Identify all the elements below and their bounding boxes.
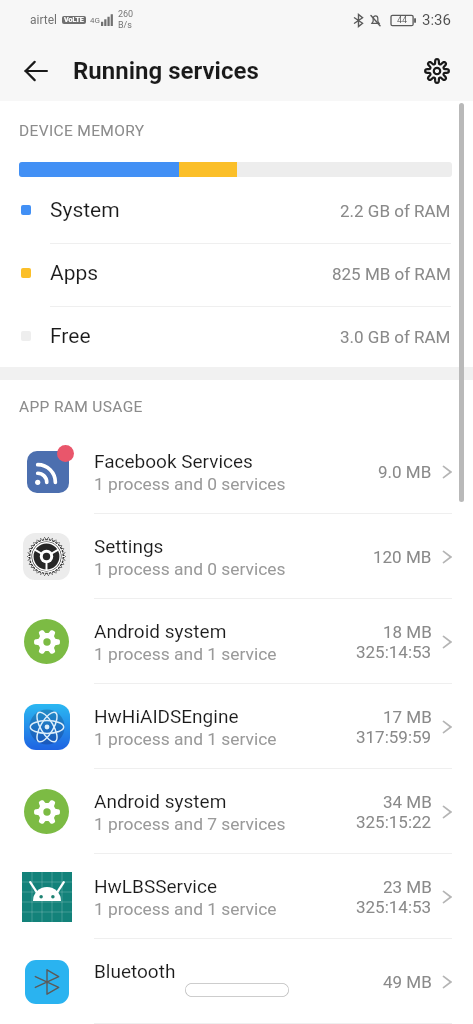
button[interactable]: Android system [0,769,473,854]
button[interactable]: Settings [413,47,461,95]
staticText: 120 MB [373,547,432,567]
staticText: 49 MB [383,972,432,992]
staticText: Facebook Services [94,450,253,472]
staticText: 1 process and 1 service [94,729,277,749]
staticText: 18 MB [383,622,432,642]
staticText: 325:15:22 [356,812,432,832]
staticText: Free [50,324,91,349]
button[interactable]: HwHiAIDSEngine [0,684,473,769]
staticText: 325:14:53 [356,642,432,662]
button[interactable]: Back [12,47,60,95]
button[interactable]: Android system [0,599,473,684]
staticText: 2.2 GB of RAM [340,201,451,221]
staticText: 1 process and 0 services [94,474,286,494]
staticText: B/s [118,20,132,31]
staticText: System [50,198,120,223]
button[interactable]: Bluetooth [0,939,473,1024]
button[interactable]: System [0,181,473,244]
button[interactable]: Facebook Services [0,429,473,514]
staticText: 3:36 [422,11,451,29]
staticText: Bluetooth [94,960,176,982]
staticText: 23 MB [383,877,432,897]
button[interactable]: HwLBSService [0,854,473,939]
staticText: 825 MB of RAM [332,264,451,284]
staticText: DEVICE MEMORY [19,122,145,140]
staticText: Android system [94,620,227,642]
staticText: Running services [73,57,259,85]
staticText: airtel [30,13,58,27]
staticText: 317:59:59 [356,727,432,747]
staticText: 1 process and 7 services [94,814,286,834]
staticText: APP RAM USAGE [19,398,143,416]
button[interactable]: Apps [0,244,473,307]
staticText: Apps [50,261,99,286]
button[interactable]: Settings [0,514,473,599]
staticText: 1 process and 0 services [94,559,286,579]
staticText: 34 MB [383,792,432,812]
staticText: 1 process and 1 service [94,644,277,664]
staticText: 4G [90,16,100,25]
staticText: HwLBSService [94,875,217,897]
staticText: 325:14:53 [356,897,432,917]
staticText: 260 [118,9,134,20]
staticText: 9.0 MB [378,462,432,482]
staticText: 17 MB [383,707,432,727]
staticText: VoLTE [64,16,84,24]
button[interactable]: Free [0,307,473,367]
staticText: HwHiAIDSEngine [94,705,239,727]
staticText: 44 [397,15,408,26]
staticText: 3.0 GB of RAM [340,327,451,347]
staticText: Settings [94,535,164,557]
staticText: Android system [94,790,227,812]
staticText: 1 process and 1 service [94,899,277,919]
